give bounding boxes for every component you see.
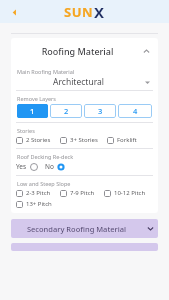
staticText: 1 bbox=[30, 106, 35, 116]
staticText: 10-12 Pitch bbox=[114, 189, 146, 197]
staticText: No bbox=[45, 162, 54, 171]
staticText: Secondary Roofing Material bbox=[11, 224, 142, 234]
button[interactable]: 2 bbox=[50, 104, 82, 118]
button[interactable]: 13+ Pitch bbox=[16, 200, 52, 208]
button[interactable]: 2-3 Pitch bbox=[16, 189, 51, 197]
staticText: X bbox=[94, 2, 105, 22]
staticText: Yes bbox=[16, 162, 27, 171]
button[interactable]: 10-12 Pitch bbox=[104, 189, 146, 197]
staticText: 3+ Stories bbox=[70, 136, 98, 144]
button[interactable]: 3+ Stories bbox=[60, 136, 98, 144]
staticText: 13+ Pitch bbox=[26, 200, 52, 208]
staticText: 2-3 Pitch bbox=[26, 189, 51, 197]
button[interactable]: No bbox=[45, 162, 65, 171]
staticText: SUN bbox=[64, 3, 94, 21]
staticText: 3 bbox=[98, 106, 103, 116]
button[interactable]: Yes bbox=[16, 162, 38, 171]
staticText: 4 bbox=[133, 106, 138, 116]
button[interactable]: Back bbox=[6, 4, 22, 20]
staticText: Low and Steep Slope bbox=[17, 180, 71, 187]
staticText: Remove Layers bbox=[17, 95, 56, 102]
staticText: Main Roofing Material bbox=[17, 68, 75, 75]
staticText: Roofing Material bbox=[16, 45, 139, 57]
button[interactable]: 1 bbox=[17, 104, 48, 118]
button[interactable]: 4 bbox=[118, 104, 152, 118]
button[interactable]: 2 Stories bbox=[16, 136, 51, 144]
staticText: Architectural bbox=[16, 76, 141, 88]
button[interactable]: Roofing Material bbox=[16, 38, 153, 64]
staticText: 2 Stories bbox=[26, 136, 51, 144]
staticText: 7-9 Pitch bbox=[70, 189, 95, 197]
button[interactable]: Secondary Roofing Material bbox=[11, 219, 158, 238]
staticText: Stories bbox=[17, 127, 35, 134]
button[interactable]: 3 bbox=[84, 104, 116, 118]
staticText: Roof Decking Re-deck bbox=[17, 153, 74, 160]
button[interactable]: Architectural bbox=[16, 76, 153, 88]
staticText: Forklift bbox=[117, 136, 137, 144]
button[interactable]: 7-9 Pitch bbox=[60, 189, 95, 197]
staticText: 2 bbox=[64, 106, 69, 116]
button[interactable]: Forklift bbox=[107, 136, 137, 144]
